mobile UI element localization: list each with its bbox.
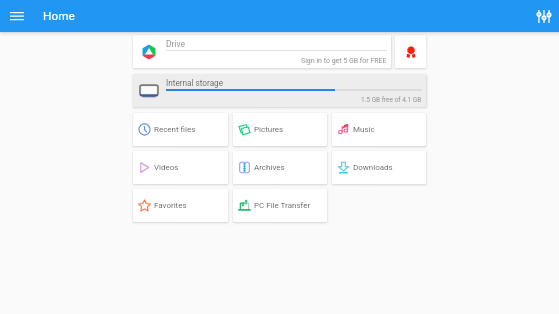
- button[interactable]: Music: [332, 113, 426, 146]
- button[interactable]: PC File Transfer: [233, 189, 327, 222]
- staticText: Favorites: [154, 201, 187, 210]
- button[interactable]: Videos: [133, 151, 228, 184]
- button[interactable]: Recent files: [133, 113, 228, 146]
- button[interactable]: Rewards: [395, 35, 426, 68]
- button[interactable]: Pictures: [233, 113, 327, 146]
- button[interactable]: Settings: [529, 0, 559, 32]
- staticText: 1.5 GB free of 4.1 GB: [361, 96, 422, 104]
- staticText: Internal storage: [166, 78, 224, 88]
- button[interactable]: Favorites: [133, 189, 228, 222]
- staticText: Sign in to get 5 GB for FREE: [301, 57, 387, 65]
- button[interactable]: Downloads: [332, 151, 426, 184]
- staticText: Videos: [154, 163, 179, 172]
- button[interactable]: Drive: [133, 35, 391, 68]
- staticText: Pictures: [254, 125, 284, 134]
- staticText: Recent files: [154, 125, 196, 134]
- button[interactable]: Archives: [233, 151, 327, 184]
- staticText: Home: [43, 9, 75, 23]
- button[interactable]: Internal storage: [133, 74, 426, 107]
- button[interactable]: Open navigation drawer: [0, 0, 33, 32]
- staticText: Downloads: [353, 163, 393, 172]
- staticText: Drive: [166, 39, 186, 49]
- staticText: Archives: [254, 163, 285, 172]
- staticText: PC File Transfer: [254, 201, 311, 210]
- staticText: Music: [353, 125, 375, 134]
